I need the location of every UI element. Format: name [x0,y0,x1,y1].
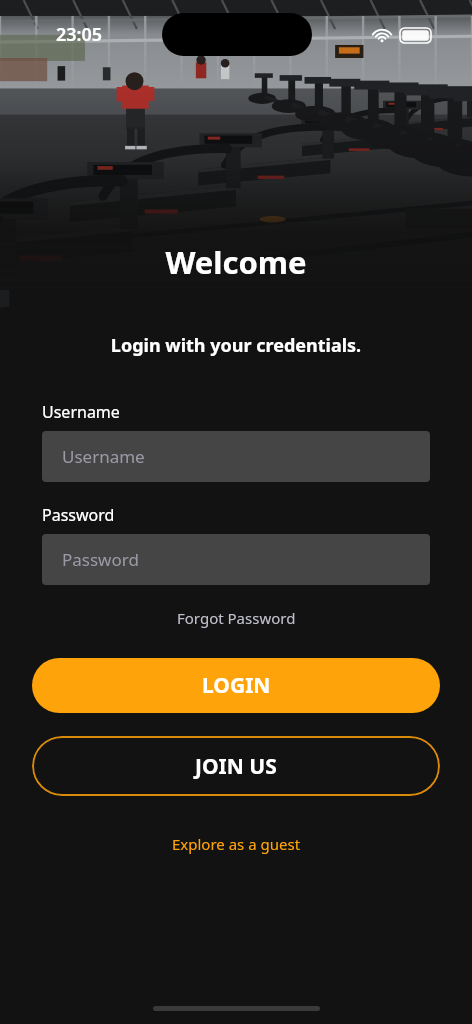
staticText: Password [62,548,139,571]
button[interactable]: Explore as a guest [162,831,311,857]
staticText: Username [42,401,120,423]
staticText: Password [42,504,115,526]
staticText: JOIN US [195,752,277,781]
staticText: Explore as a guest [172,834,301,854]
staticText: LOGIN [202,671,271,700]
button[interactable]: JOIN US [32,736,440,796]
button[interactable]: Password [42,534,430,585]
staticText: 23:05 [56,22,103,47]
staticText: Forgot Password [177,608,296,628]
button[interactable]: Forgot Password [167,605,306,631]
staticText: Username [62,445,145,468]
button[interactable]: Username [42,431,430,482]
staticText: Login with your credentials. [0,333,472,358]
staticText: Welcome [0,241,472,283]
button[interactable]: LOGIN [32,658,440,713]
